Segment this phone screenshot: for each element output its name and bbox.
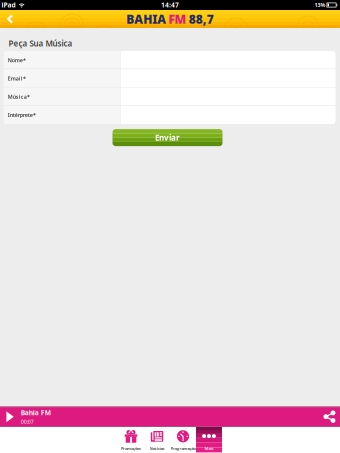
staticText: Intérprete (8, 111, 33, 118)
button[interactable]: Mais (196, 427, 222, 452)
button[interactable]: Enviar (112, 129, 222, 146)
button[interactable]: Promoções (118, 427, 144, 452)
staticText: Nome (8, 56, 23, 64)
staticText: Peça Sua Música (8, 38, 72, 49)
button[interactable]: Email (3, 69, 335, 87)
staticText: * (33, 111, 36, 118)
staticText: * (27, 93, 30, 100)
staticText: Música (8, 93, 27, 100)
staticText: Bahia FM (21, 408, 51, 417)
staticText: 88,7 (189, 11, 214, 27)
staticText: 14:47 (161, 1, 179, 9)
staticText: 00:07 (21, 418, 34, 425)
button[interactable]: Notícias (144, 427, 170, 452)
button[interactable]: Programação (170, 427, 196, 452)
staticText: Enviar (155, 132, 180, 143)
staticText: Programação (170, 446, 195, 451)
staticText: * (23, 56, 26, 64)
staticText: FM (168, 11, 186, 27)
staticText: * (23, 75, 26, 82)
staticText: iPad (1, 1, 15, 9)
button[interactable]: Play (0, 407, 21, 426)
button[interactable]: Nome (3, 51, 335, 69)
staticText: BAHIA (126, 11, 166, 27)
staticText: Email (8, 75, 23, 82)
button[interactable]: Share (315, 407, 340, 426)
staticText: Notícias (149, 446, 164, 451)
staticText: 13% (314, 1, 325, 9)
staticText: Mais (204, 446, 213, 451)
button[interactable]: Música (3, 87, 335, 106)
staticText: Promoções (121, 446, 141, 451)
button[interactable]: Intérprete (3, 106, 335, 124)
button[interactable]: Back (0, 10, 20, 28)
